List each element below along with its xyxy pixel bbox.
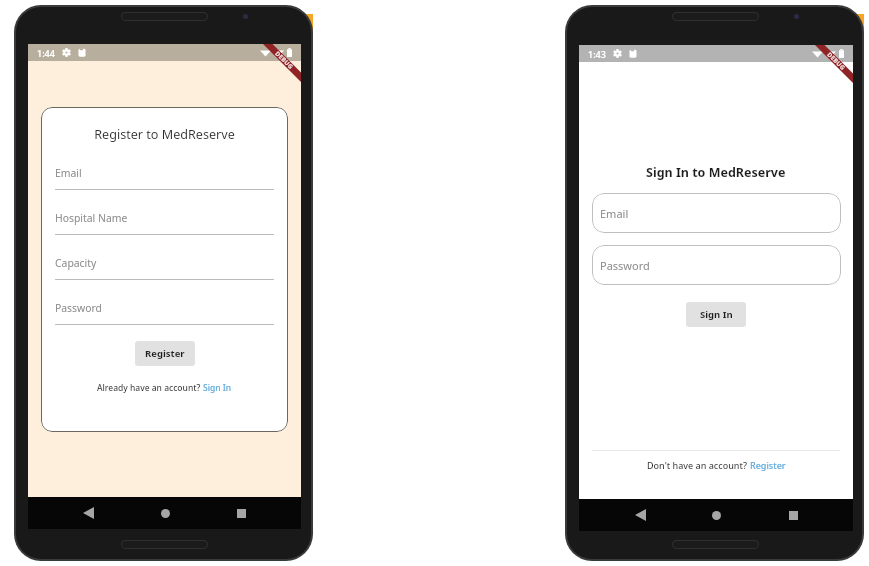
button[interactable]: Email [592, 193, 841, 233]
button[interactable]: Recent apps [777, 499, 809, 531]
staticText: Register to MedReserve [94, 126, 235, 143]
staticText: Sign In to MedReserve [646, 164, 786, 181]
button[interactable]: Register [135, 341, 195, 366]
staticText: Don't have an account? [647, 459, 750, 471]
button[interactable]: Password [592, 245, 841, 285]
staticText: Register [145, 347, 185, 360]
staticText: Sign In [700, 308, 733, 321]
staticText: Hospital Name [55, 211, 128, 225]
staticText: Sign In [203, 382, 232, 394]
staticText: Password [600, 258, 650, 273]
staticText: Password [55, 301, 102, 315]
staticText: 1:44 [37, 47, 55, 59]
button[interactable]: Register [750, 459, 786, 471]
staticText: Already have an account? [97, 382, 203, 394]
button[interactable]: Home [700, 499, 732, 531]
button[interactable]: Back [72, 497, 104, 529]
button[interactable]: Back [624, 499, 656, 531]
staticText: Email [600, 206, 629, 221]
staticText: Email [55, 166, 82, 180]
button[interactable]: Sign In [686, 302, 746, 327]
staticText: Register [750, 459, 786, 471]
staticText: 1:43 [588, 48, 606, 60]
button[interactable]: Sign In [203, 382, 232, 394]
button[interactable]: Home [149, 497, 181, 529]
staticText: Capacity [55, 256, 97, 270]
button[interactable]: Recent apps [225, 497, 257, 529]
